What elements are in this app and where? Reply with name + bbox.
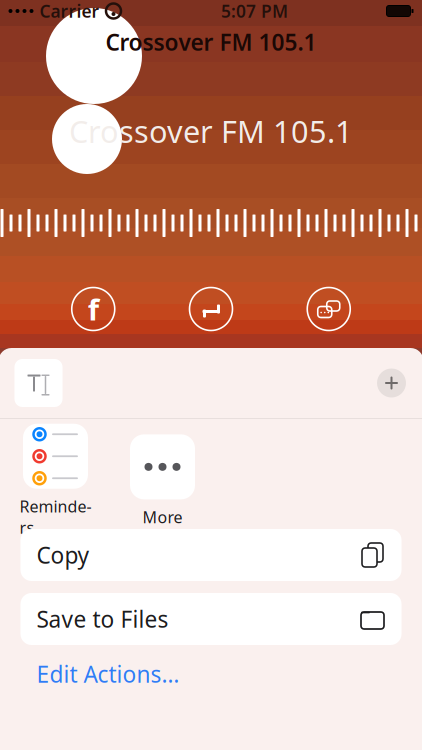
- staticText: Carrier: [39, 0, 99, 22]
- button[interactable]: Facebook: [70, 286, 116, 332]
- button[interactable]: Close: [369, 361, 413, 405]
- staticText: Reminders: [19, 496, 91, 538]
- button[interactable]: Save to Files: [20, 593, 401, 645]
- button[interactable]: Share: [188, 286, 234, 332]
- staticText: Save to Files: [36, 604, 168, 634]
- button[interactable]: Comments: [306, 286, 352, 332]
- staticText: Crossover FM 105.1: [69, 111, 353, 151]
- button[interactable]: Copy: [20, 529, 401, 581]
- staticText: 5:07 PM: [221, 0, 288, 22]
- button[interactable]: More: [125, 434, 199, 528]
- staticText: f: [88, 289, 99, 328]
- staticText: Copy: [36, 540, 89, 570]
- button[interactable]: Edit Actions…: [0, 645, 217, 703]
- staticText: Crossover FM 105.1: [105, 27, 316, 57]
- staticText: Edit Actions…: [36, 659, 179, 689]
- staticText: More: [142, 506, 182, 528]
- button[interactable]: Reminders: [18, 424, 92, 538]
